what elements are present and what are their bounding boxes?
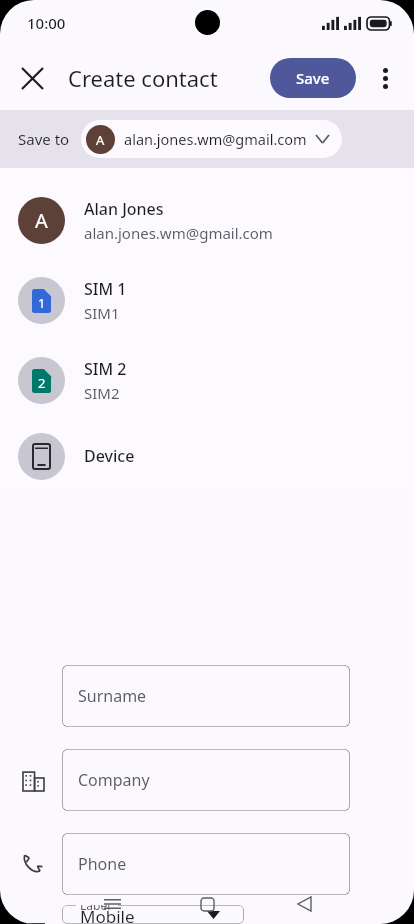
staticText: SIM1 xyxy=(84,303,120,323)
staticText: A xyxy=(35,207,48,234)
button[interactable]: 2 xyxy=(0,340,414,420)
staticText: Company xyxy=(78,769,150,791)
button[interactable]: 1 xyxy=(0,260,414,340)
staticText: Save xyxy=(296,68,330,88)
staticText: Create contact xyxy=(68,63,218,93)
staticText: Label xyxy=(80,905,111,913)
staticText: A xyxy=(96,131,105,149)
staticText: Surname xyxy=(78,685,147,707)
staticText: 10:00 xyxy=(27,13,66,33)
button[interactable]: Save xyxy=(270,58,356,98)
staticText: Phone xyxy=(78,853,127,875)
staticText: Mobile xyxy=(80,905,135,924)
staticText: SIM2 xyxy=(84,383,120,403)
staticText: Device xyxy=(84,445,135,467)
staticText: Alan Jones xyxy=(84,198,164,220)
staticText: alan.jones.wm@gmail.com xyxy=(124,129,307,149)
staticText: 2 xyxy=(38,374,46,392)
button[interactable]: Surname xyxy=(62,665,350,727)
button[interactable]: Home xyxy=(187,884,227,924)
button[interactable]: Company xyxy=(62,749,350,811)
staticText: 1 xyxy=(38,294,46,312)
button[interactable]: Device xyxy=(0,420,414,492)
button[interactable]: More options xyxy=(362,55,408,101)
staticText: SIM 1 xyxy=(84,278,127,300)
staticText: alan.jones.wm@gmail.com xyxy=(84,223,273,243)
button[interactable]: Phone xyxy=(62,833,350,895)
button[interactable]: Back xyxy=(284,884,324,924)
button[interactable]: Recents xyxy=(92,884,132,924)
button[interactable]: A xyxy=(81,120,342,158)
staticText: Save to xyxy=(18,129,70,149)
staticText: SIM 2 xyxy=(84,358,127,380)
button[interactable]: Label xyxy=(62,905,244,924)
button[interactable]: A xyxy=(0,180,414,260)
button[interactable]: Close xyxy=(8,54,56,102)
